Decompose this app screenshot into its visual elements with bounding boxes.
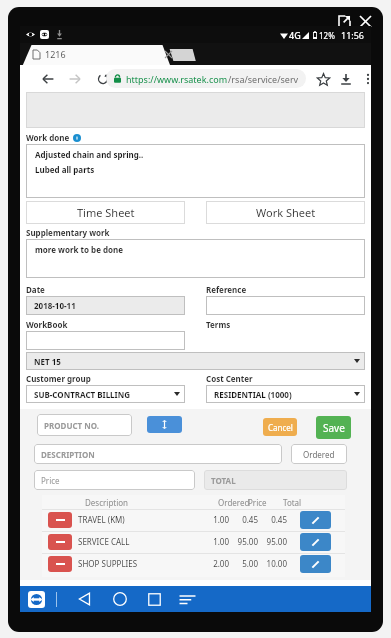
staticText: Terms (206, 319, 231, 330)
staticText: 1.00 (201, 536, 229, 547)
button[interactable]: Work Sheet (206, 201, 365, 224)
button[interactable]: Price (34, 470, 195, 490)
staticText: Date (26, 284, 45, 295)
button[interactable]: SUB-CONTRACT BILLING (26, 385, 185, 403)
button[interactable] (206, 296, 365, 315)
staticText: DESCRIPTION (41, 449, 95, 460)
staticText: 1.00 (201, 514, 229, 525)
staticText: /rsa/service/serv (228, 73, 299, 85)
staticText: 12% (319, 30, 335, 41)
staticText: Customer group (26, 373, 91, 384)
staticText: Description (85, 497, 129, 508)
staticText: Adjusted chain and spring.. (35, 149, 144, 160)
button[interactable]: PRODUCT NO. (37, 414, 132, 436)
staticText: 2018-10-11 (34, 300, 76, 311)
staticText: Work Sheet (256, 205, 316, 220)
staticText: 11:56 (341, 29, 365, 41)
button[interactable]: Save (316, 416, 351, 439)
staticText: 1216 (45, 48, 66, 60)
staticText: Supplementary work (26, 227, 110, 238)
button[interactable]: Home (107, 588, 133, 610)
button[interactable]: 1216 (28, 43, 178, 65)
staticText: PRODUCT NO. (44, 420, 100, 431)
staticText: 0.45 (259, 514, 287, 525)
button[interactable]: More options (357, 67, 379, 91)
button[interactable]: Cancel (263, 418, 297, 436)
staticText: Cancel (268, 422, 293, 433)
staticText: 95.00 (230, 536, 258, 547)
staticText: 0.45 (230, 514, 258, 525)
staticText: Price (248, 497, 267, 508)
button[interactable]: DESCRIPTION (34, 444, 282, 464)
staticText: 5.00 (230, 558, 258, 569)
button[interactable]: Forward (64, 67, 86, 91)
staticText: Price (41, 475, 60, 486)
button[interactable]: Remove SHOP SUPPLIES (48, 556, 72, 572)
button[interactable]: Back (37, 67, 59, 91)
button[interactable]: Ordered (291, 444, 347, 464)
button[interactable]: Time Sheet (26, 201, 185, 224)
staticText: Lubed all parts (35, 164, 95, 175)
button[interactable]: Edit SHOP SUPPLIES (300, 555, 331, 573)
button[interactable]: Back (72, 588, 98, 610)
staticText: Ordered (218, 497, 250, 508)
staticText: Total (283, 497, 302, 508)
staticText: SHOP SUPPLIES (78, 558, 138, 569)
staticText: Save (323, 421, 345, 435)
staticText: NET 15 (34, 356, 61, 367)
staticText: Ordered (303, 449, 335, 460)
button[interactable]: Download (335, 67, 357, 91)
button[interactable]: Adjusted chain and spring.. (26, 144, 365, 198)
button[interactable]: Edit SERVICE CALL (300, 533, 331, 551)
staticText: SUB-CONTRACT BILLING (34, 389, 130, 400)
staticText: Time Sheet (77, 205, 135, 220)
button[interactable]: Move (147, 416, 182, 433)
staticText: Work done (26, 132, 70, 143)
button[interactable]: RESIDENTIAL (1000) (206, 385, 365, 403)
button[interactable]: Close (358, 14, 372, 28)
staticText: 4G (289, 29, 301, 41)
button[interactable]: Remove SERVICE CALL (48, 534, 72, 550)
button[interactable]: Reload (92, 67, 114, 91)
staticText: 2.00 (201, 558, 229, 569)
staticText: 95.00 (259, 536, 287, 547)
button[interactable]: Remove TRAVEL (KM) (48, 512, 72, 528)
staticText: WorkBook (26, 319, 68, 330)
staticText: TRAVEL (KM) (78, 514, 125, 525)
staticText: TOTAL (211, 475, 236, 486)
button[interactable] (26, 331, 185, 350)
staticText: 10.00 (259, 558, 287, 569)
button[interactable]: Menu (174, 588, 200, 610)
button[interactable]: 2018-10-11 (26, 296, 185, 315)
staticText: Reference (206, 284, 247, 295)
button[interactable]: NET 15 (26, 352, 365, 370)
button[interactable]: Edit TRAVEL (KM) (300, 511, 331, 529)
button[interactable]: Bookmark (312, 67, 334, 91)
button[interactable]: more work to be done (26, 239, 365, 278)
staticText: more work to be done (35, 244, 124, 255)
button[interactable]: https://www.rsatek.com (106, 69, 306, 88)
button[interactable]: TeamViewer (27, 590, 46, 609)
button[interactable]: Open in new window (337, 14, 351, 28)
staticText: Cost Center (206, 373, 253, 384)
staticText: https://www.rsatek.com (126, 73, 228, 85)
staticText: SERVICE CALL (78, 536, 130, 547)
button[interactable]: Recents (141, 588, 167, 610)
staticText: RESIDENTIAL (1000) (214, 389, 292, 400)
